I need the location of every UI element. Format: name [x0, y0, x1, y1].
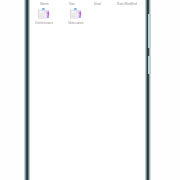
button[interactable]: Size	[58, 1, 85, 7]
staticText: Kind	[94, 2, 101, 6]
button[interactable]: Untitled.pages	[33, 8, 55, 24]
staticText: Date Modified	[117, 2, 137, 6]
button[interactable]: Kind	[85, 1, 109, 7]
staticText: Untitled.pages	[33, 21, 55, 24]
button[interactable]: Notes.pages	[65, 8, 87, 24]
staticText: Notes.pages	[65, 21, 87, 24]
button[interactable]: Date Modified	[109, 1, 145, 7]
staticText: Size	[69, 2, 75, 6]
button[interactable]: Name	[30, 1, 58, 7]
staticText: Name	[40, 2, 49, 6]
